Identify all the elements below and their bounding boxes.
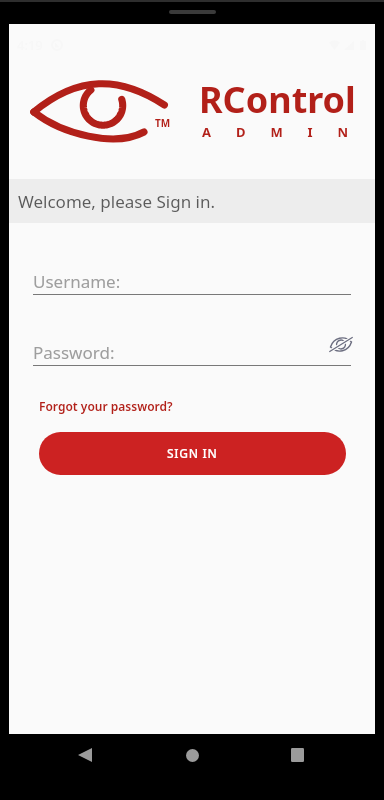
button[interactable]: Password: xyxy=(33,335,351,366)
button[interactable]: Home xyxy=(174,737,210,773)
staticText: A D M I N xyxy=(202,123,352,141)
button[interactable]: Username: xyxy=(33,264,351,295)
staticText: Welcome, please Sign in. xyxy=(18,190,216,213)
staticText: Password: xyxy=(33,341,115,364)
staticText: SIGN IN xyxy=(167,445,218,461)
button[interactable]: SIGN IN xyxy=(39,432,346,475)
staticText: Username: xyxy=(33,270,121,293)
button[interactable]: Recent apps xyxy=(279,737,315,773)
button[interactable]: Show password xyxy=(325,328,357,360)
staticText: TM xyxy=(155,116,171,130)
staticText: RControl xyxy=(199,75,356,124)
button[interactable]: Forgot your password? xyxy=(39,398,173,414)
button[interactable]: Back xyxy=(67,737,103,773)
